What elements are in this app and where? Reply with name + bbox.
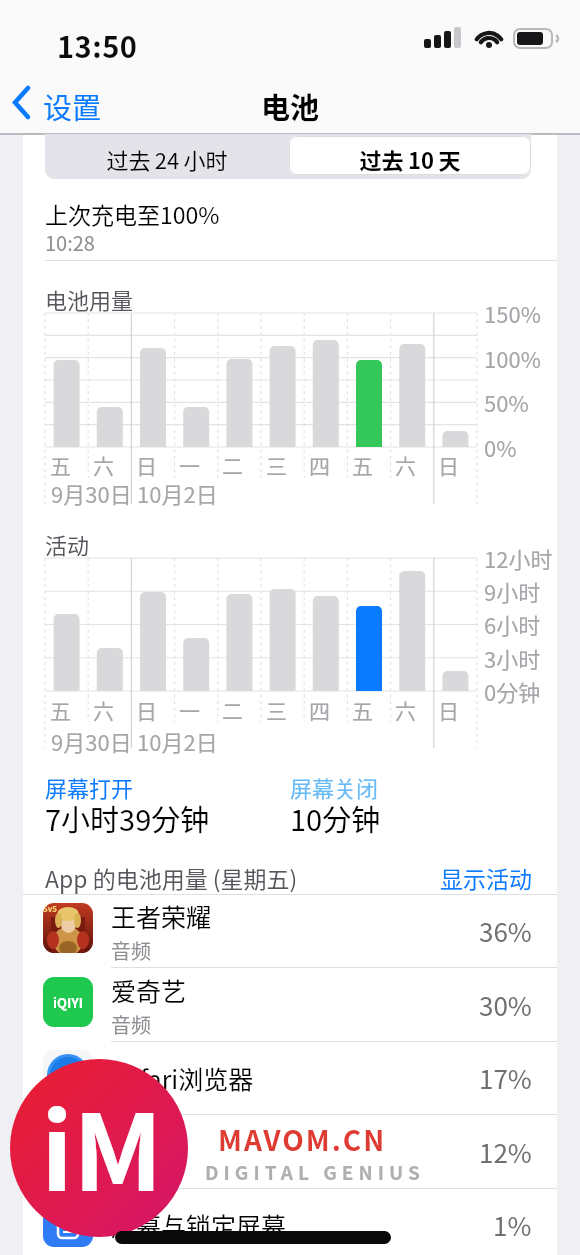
staticText: 10分钟 xyxy=(290,797,381,839)
staticText: 5v5 xyxy=(43,903,58,915)
staticText: 四 xyxy=(309,450,330,480)
staticText: 30% xyxy=(479,986,532,1024)
staticText: 二 xyxy=(222,450,243,480)
staticText: 日 xyxy=(438,450,459,480)
staticText: 五 xyxy=(50,695,71,725)
button[interactable]: 设置 xyxy=(8,80,128,125)
staticText: 1% xyxy=(493,1206,532,1244)
staticText: 王者荣耀 xyxy=(111,898,212,934)
staticText: 四 xyxy=(309,695,330,725)
staticText: 0% xyxy=(484,431,517,463)
staticText: 显示活动 xyxy=(400,861,532,894)
staticText: 二 xyxy=(222,695,243,725)
button[interactable]: 屏幕与锁定屏幕 xyxy=(23,1188,557,1255)
staticText: 过去 24 小时 xyxy=(45,143,289,175)
staticText: 36% xyxy=(479,912,532,950)
staticText: 一 xyxy=(179,450,200,480)
staticText: 爱奇艺 xyxy=(111,972,187,1008)
staticText: 音频 xyxy=(111,936,151,965)
button[interactable]: 显示活动 xyxy=(400,855,540,891)
staticText: 日 xyxy=(438,695,459,725)
staticText: 一 xyxy=(179,695,200,725)
staticText: 五 xyxy=(352,450,373,480)
staticText: 三 xyxy=(266,450,287,480)
staticText: 3小时 xyxy=(484,642,541,674)
staticText: 日 xyxy=(136,450,157,480)
button[interactable]: 5v5 xyxy=(23,894,557,968)
staticText: 屏幕打开 xyxy=(45,771,134,803)
staticText: 17% xyxy=(479,1059,532,1097)
staticText: 6小时 xyxy=(484,608,541,640)
staticText: 7小时39分钟 xyxy=(45,797,210,839)
staticText: 屏幕关闭 xyxy=(290,771,379,803)
staticText: 10月2日 xyxy=(137,477,218,509)
staticText: 设置 xyxy=(43,85,102,127)
staticText: 三 xyxy=(266,695,287,725)
staticText: 12小时 xyxy=(484,542,553,574)
staticText: iM xyxy=(41,1069,241,1221)
staticText: MAVOM.CN xyxy=(218,1119,387,1160)
button[interactable] xyxy=(45,134,531,179)
staticText: DIGITAL GENIUS xyxy=(205,1158,425,1186)
staticText: 150% xyxy=(484,297,541,329)
staticText: iQIYI xyxy=(53,993,84,1012)
staticText: 10月2日 xyxy=(137,725,218,757)
staticText: 10:28 xyxy=(45,228,95,257)
staticText: 100% xyxy=(484,342,541,374)
staticText: 13:50 xyxy=(57,24,138,66)
staticText: App 的电池用量 (星期五) xyxy=(45,861,298,894)
staticText: 六 xyxy=(395,695,416,725)
staticText: 日 xyxy=(136,695,157,725)
staticText: 五 xyxy=(50,450,71,480)
staticText: 屏幕与锁定屏幕 xyxy=(111,1207,287,1243)
staticText: 上次充电至100% xyxy=(45,197,220,230)
staticText: 过去 10 天 xyxy=(289,143,531,175)
staticText: 9月30日 xyxy=(51,477,132,509)
button[interactable]: 12% xyxy=(23,1115,557,1189)
staticText: 六 xyxy=(93,450,114,480)
staticText: 9月30日 xyxy=(51,725,132,757)
staticText: 9小时 xyxy=(484,575,541,607)
staticText: 六 xyxy=(395,450,416,480)
button[interactable]: iQIYI xyxy=(23,968,557,1042)
staticText: 五 xyxy=(352,695,373,725)
staticText: Safari浏览器 xyxy=(111,1060,254,1096)
staticText: 电池 xyxy=(0,85,580,127)
staticText: 六 xyxy=(93,695,114,725)
button[interactable] xyxy=(289,136,531,175)
staticText: 电池用量 xyxy=(45,283,134,315)
staticText: 12% xyxy=(479,1133,532,1171)
staticText: 50% xyxy=(484,386,529,418)
staticText: 活动 xyxy=(45,528,90,560)
staticText: 0分钟 xyxy=(484,675,541,707)
button[interactable]: Safari浏览器 xyxy=(23,1041,557,1115)
staticText: 音频 xyxy=(111,1010,151,1039)
